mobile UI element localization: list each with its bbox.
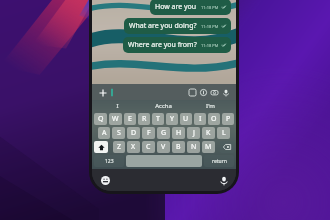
button[interactable]: L — [217, 127, 230, 139]
staticText: Where are you from? — [128, 40, 197, 50]
button[interactable]: Emoji — [198, 87, 209, 98]
staticText: E — [128, 114, 132, 124]
staticText: U — [183, 114, 189, 124]
staticText: 11:18 PM — [201, 24, 219, 29]
button[interactable]: Voice message — [218, 175, 229, 186]
staticText: I'm — [206, 102, 215, 110]
button[interactable]: Accha — [140, 100, 187, 112]
staticText: How are you — [155, 2, 197, 12]
button[interactable]: 123 — [94, 155, 124, 167]
button[interactable]: How are you — [150, 0, 231, 15]
button[interactable]: V — [157, 141, 170, 153]
button[interactable]: Voice message — [220, 87, 231, 98]
button[interactable]: Y — [166, 113, 178, 125]
staticText: N — [191, 142, 197, 152]
staticText: F — [147, 128, 151, 138]
staticText: Accha — [155, 102, 172, 110]
staticText: return — [212, 158, 227, 165]
button[interactable]: Attach — [97, 87, 108, 98]
button[interactable]: W — [109, 113, 122, 125]
button[interactable]: T — [152, 113, 164, 125]
button[interactable]: S — [112, 127, 125, 139]
button[interactable]: I — [94, 100, 140, 112]
button[interactable]: Sticker — [187, 87, 198, 98]
button[interactable]: A — [98, 127, 110, 139]
button[interactable]: G — [157, 127, 170, 139]
button[interactable]: I'm — [187, 100, 234, 112]
staticText: J — [193, 128, 195, 138]
button[interactable]: B — [172, 141, 185, 153]
button[interactable]: Backspace — [220, 141, 234, 153]
staticText: R — [142, 114, 147, 124]
button[interactable]: R — [138, 113, 150, 125]
button[interactable]: K — [202, 127, 215, 139]
button[interactable]: Q — [94, 113, 107, 125]
button[interactable]: E — [124, 113, 136, 125]
staticText: I — [116, 102, 119, 110]
staticText: W — [112, 114, 119, 124]
staticText: L — [222, 128, 226, 138]
button[interactable]: O — [208, 113, 220, 125]
button[interactable]: N — [187, 141, 200, 153]
staticText: O — [211, 114, 217, 124]
staticText: V — [161, 142, 166, 152]
button[interactable]: H — [172, 127, 185, 139]
button[interactable]: U — [180, 113, 192, 125]
button[interactable]: What are you doing? — [124, 18, 231, 34]
button[interactable]: Z — [113, 141, 125, 153]
button[interactable]: P — [222, 113, 234, 125]
button[interactable]: Camera — [209, 87, 220, 98]
button[interactable]: F — [142, 127, 155, 139]
button[interactable]: I — [194, 113, 206, 125]
button[interactable]: M — [202, 141, 215, 153]
staticText: X — [131, 142, 136, 152]
staticText: B — [176, 142, 181, 152]
button[interactable]: Emoji — [99, 174, 111, 186]
staticText: K — [206, 128, 211, 138]
button[interactable]: C — [142, 141, 155, 153]
staticText: C — [146, 142, 151, 152]
staticText: P — [226, 114, 231, 124]
staticText: T — [156, 114, 160, 124]
button[interactable]: Where are you from? — [123, 37, 231, 53]
button[interactable]: X — [127, 141, 140, 153]
button[interactable]: Shift — [94, 141, 108, 153]
staticText: 11:18 PM — [201, 5, 219, 10]
staticText: G — [161, 128, 167, 138]
staticText: H — [176, 128, 182, 138]
staticText: D — [131, 128, 137, 138]
staticText: Z — [117, 142, 122, 152]
staticText: 11:18 PM — [201, 43, 219, 48]
button[interactable]: Space — [126, 155, 202, 167]
staticText: Y — [170, 114, 174, 124]
staticText: Q — [98, 114, 104, 124]
staticText: 123 — [105, 158, 114, 165]
button[interactable]: D — [127, 127, 140, 139]
button[interactable]: return — [204, 155, 234, 167]
staticText: What are you doing? — [129, 21, 197, 31]
staticText: M — [205, 142, 212, 152]
staticText: A — [102, 128, 107, 138]
button[interactable]: J — [187, 127, 200, 139]
staticText: S — [117, 128, 121, 138]
staticText: I — [199, 114, 202, 124]
